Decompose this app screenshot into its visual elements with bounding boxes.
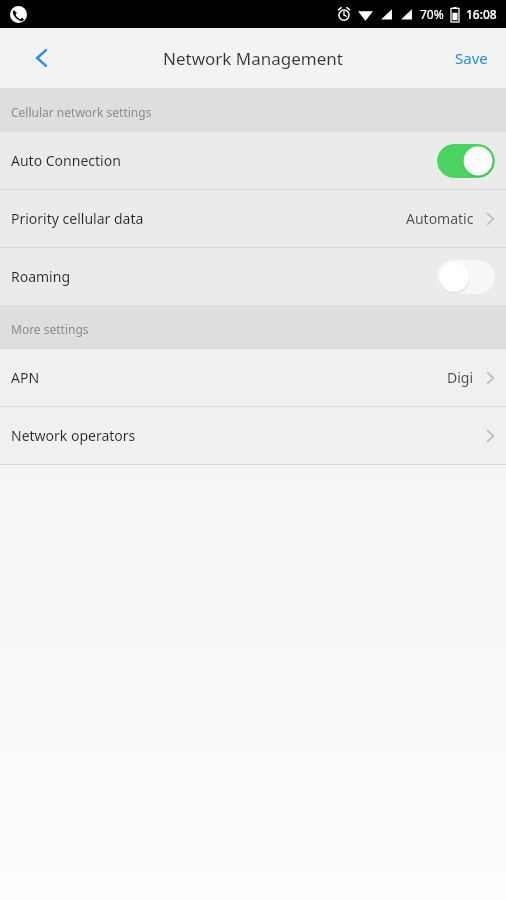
staticText: Save: [455, 48, 488, 68]
staticText: Digi: [447, 368, 474, 387]
staticText: 70%: [420, 6, 444, 22]
button[interactable]: Off: [437, 260, 495, 294]
staticText: Automatic: [406, 209, 474, 228]
staticText: Roaming: [11, 267, 70, 286]
button[interactable]: Save: [445, 40, 498, 76]
staticText: Priority cellular data: [11, 209, 144, 228]
button[interactable]: Priority cellular data: [0, 190, 506, 247]
staticText: APN: [11, 368, 40, 387]
button[interactable]: On: [437, 144, 495, 178]
staticText: Network operators: [11, 426, 136, 445]
button[interactable]: Back: [14, 30, 70, 86]
button[interactable]: APN: [0, 349, 506, 406]
button[interactable]: Roaming: [0, 248, 506, 305]
staticText: 16:08: [466, 6, 497, 22]
button[interactable]: Auto Connection: [0, 132, 506, 189]
button[interactable]: Network operators: [0, 407, 506, 464]
staticText: More settings: [11, 321, 89, 337]
staticText: Cellular network settings: [11, 104, 152, 120]
staticText: Network Management: [163, 47, 343, 70]
staticText: Auto Connection: [11, 151, 121, 170]
